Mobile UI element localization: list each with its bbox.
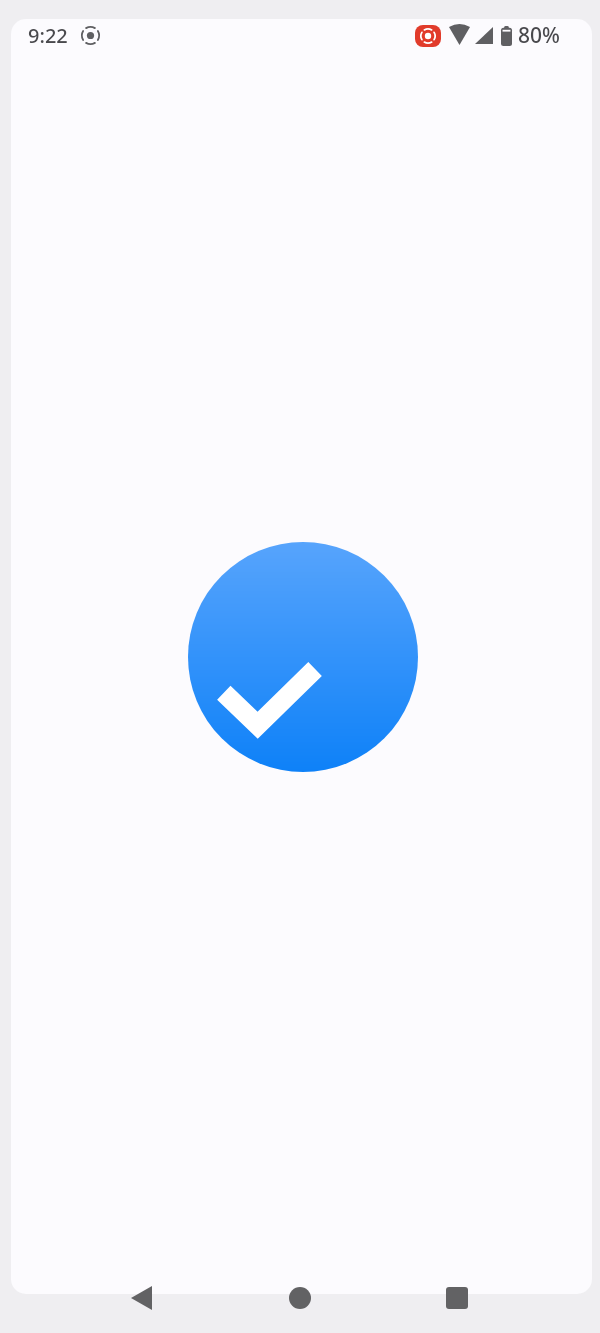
- button[interactable]: Recent apps: [433, 1274, 481, 1322]
- button[interactable]: Back: [117, 1274, 165, 1322]
- other: Success: [188, 542, 418, 772]
- staticText: 80%: [518, 21, 560, 50]
- staticText: 9:22: [28, 22, 68, 49]
- other: Screen recording: [415, 25, 441, 47]
- button[interactable]: Home: [276, 1274, 324, 1322]
